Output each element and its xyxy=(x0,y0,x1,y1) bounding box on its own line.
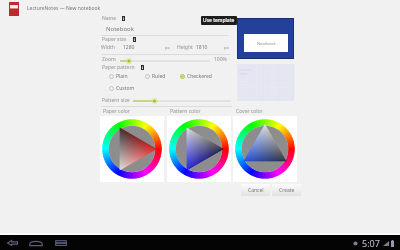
staticText: Notebook xyxy=(106,25,134,33)
staticText: 1280 xyxy=(123,44,135,51)
button[interactable]: Plain xyxy=(109,72,128,80)
staticText: Paper color xyxy=(103,108,130,115)
staticText: Zoom xyxy=(102,56,116,63)
button[interactable]: Home xyxy=(26,235,46,250)
staticText: Name xyxy=(102,15,117,22)
button[interactable]: Create xyxy=(272,184,301,196)
staticText: Custom xyxy=(116,85,135,92)
button[interactable]: Recent apps xyxy=(51,235,71,250)
staticText: 5:07 xyxy=(362,237,380,249)
button[interactable]: Custom xyxy=(109,84,135,92)
staticText: Use template xyxy=(203,17,235,24)
staticText: Pattern color xyxy=(170,108,201,115)
other: Wi-Fi xyxy=(383,241,389,246)
button[interactable]: Cover color xyxy=(233,116,297,182)
button[interactable]: Checkered xyxy=(180,72,212,80)
button[interactable]: Ruled xyxy=(145,72,166,80)
staticText: Cancel xyxy=(248,187,264,194)
staticText: Pattern size xyxy=(102,97,130,104)
button[interactable]: Slider xyxy=(120,57,210,65)
staticText: 100% xyxy=(214,56,227,63)
staticText: Cover color xyxy=(236,108,263,115)
staticText: LectureNotes — New notebook xyxy=(27,5,101,12)
staticText: Width xyxy=(101,44,115,51)
staticText: Paper pattern xyxy=(102,64,135,71)
button[interactable]: Back xyxy=(3,235,21,250)
staticText: px xyxy=(165,45,170,50)
staticText: Notebook xyxy=(257,41,276,46)
staticText: Paper size xyxy=(102,36,126,43)
button[interactable]: Use template xyxy=(201,16,237,25)
button[interactable]: Cancel xyxy=(241,184,270,196)
staticText: Create xyxy=(279,187,295,194)
button[interactable]: Paper color xyxy=(100,116,164,182)
staticText: Checkered xyxy=(187,73,212,80)
staticText: Plain xyxy=(116,73,128,80)
button[interactable]: Pattern color xyxy=(167,116,231,182)
button[interactable]: Cover preview xyxy=(238,19,293,58)
other: Notification xyxy=(353,241,358,246)
staticText: 1810 xyxy=(196,44,208,51)
staticText: Height xyxy=(177,44,193,51)
staticText: Ruled xyxy=(152,73,166,80)
staticText: px xyxy=(224,45,229,50)
button[interactable]: Slider xyxy=(133,97,231,105)
other: Battery xyxy=(391,240,394,247)
